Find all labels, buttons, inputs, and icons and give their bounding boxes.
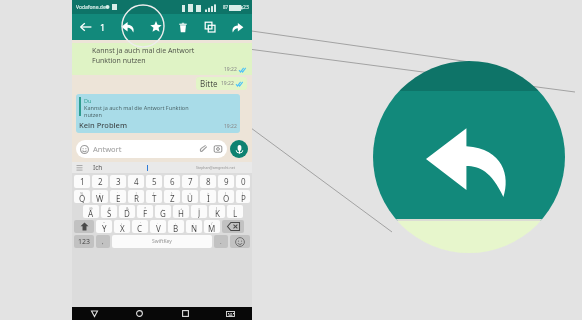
staticText: Y [102,223,107,233]
staticText: 1 [80,176,85,187]
button[interactable]: + [173,205,189,218]
staticText: + [180,206,183,211]
staticText: Kannst ja auch mal die Antwort [92,46,195,56]
staticText: Vodafone.de [76,4,106,11]
button[interactable]: { [146,190,162,203]
button[interactable]: Copy [200,17,220,37]
staticText: = [198,206,201,211]
button[interactable]: 123 [74,235,94,248]
button[interactable]: Kannst ja auch mal die Antwort [72,43,252,75]
staticText: 4 [134,176,139,187]
button[interactable]: Keyboard [222,307,238,320]
button[interactable]: * [137,205,153,218]
button[interactable]: Delete [173,17,193,37]
button[interactable]: 2 [92,175,108,188]
button[interactable]: ( [209,205,225,218]
staticText: 9 [224,176,229,187]
button[interactable]: ‹ [114,220,130,233]
button[interactable]: 5 [146,175,162,188]
staticText: · [157,221,159,226]
button[interactable]: 3 [110,175,126,188]
staticText: N [191,223,198,233]
button[interactable]: Du [76,94,240,133]
button[interactable]: Reply [117,16,139,38]
staticText: Kein Problem [79,120,127,130]
button[interactable]: ` [110,190,126,203]
staticText: M [208,223,216,233]
staticText: . [220,238,222,246]
staticText: 19:23 [236,4,249,11]
button[interactable]: , [96,235,110,248]
button[interactable]: Bitte [196,77,247,90]
button[interactable]: ) [227,205,243,218]
button[interactable]: Back [77,18,95,36]
button[interactable]: " [96,220,112,233]
button[interactable]: % [74,190,90,203]
staticText: Kannst ja auch mal die Antwort Funktion [84,104,189,111]
staticText: # [108,206,111,211]
button[interactable]: > [200,190,216,203]
staticText: SwiftKey [152,238,172,245]
button[interactable]: · [150,220,166,233]
staticText: ( [216,206,218,211]
button[interactable]: 6 [164,175,180,188]
staticText: 2 [98,176,103,187]
staticText: 0 [241,176,246,187]
button[interactable]: ~ [92,190,108,203]
button[interactable]: Forward [227,17,247,37]
staticText: ) [242,191,244,196]
button[interactable]: # [101,205,117,218]
button[interactable]: . [214,235,228,248]
button[interactable]: < [182,190,198,203]
button[interactable]: Back [86,307,102,320]
staticText: 19:22 [221,80,234,87]
button[interactable]: ( [218,190,234,203]
button[interactable] [222,220,244,233]
button[interactable]: Voice message [230,140,248,158]
button[interactable]: = [191,205,207,218]
button[interactable]: 0 [236,175,250,188]
button[interactable]: 1 [74,175,90,188]
button[interactable]: ' [132,220,148,233]
staticText: G [160,208,166,218]
button[interactable]: : [168,220,184,233]
button[interactable]: } [164,190,180,203]
staticText: U [187,193,193,203]
staticText: ‹ [121,221,123,226]
staticText: * [144,206,147,211]
staticText: 3 [116,176,121,187]
button[interactable]: Antwort [76,140,227,158]
button[interactable]: 7 [182,175,198,188]
button[interactable] [230,235,250,248]
staticText: D [124,208,130,218]
button[interactable]: - [155,205,171,218]
button[interactable] [74,220,94,233]
staticText: | [135,191,138,196]
staticText: ' [140,221,141,226]
button[interactable]: Home [131,307,147,320]
staticText: 5 [152,176,157,187]
button[interactable]: SwiftKey [112,235,212,248]
staticText: S [107,208,112,218]
button[interactable]: | [128,190,144,203]
staticText: J [198,208,201,218]
button[interactable]: 8 [200,175,216,188]
button[interactable]: @ [83,205,99,218]
staticText: ( [225,191,227,196]
button[interactable]: Star [146,17,166,37]
button[interactable]: Recent apps [177,307,193,320]
staticText: - [162,206,164,211]
button[interactable]: ; [186,220,202,233]
staticText: V [156,223,161,233]
staticText: L [233,208,238,218]
button[interactable]: ) [236,190,250,203]
button[interactable]: / [204,220,220,233]
staticText: F [143,208,148,218]
staticText: A [88,208,94,218]
button[interactable]: & [119,205,135,218]
button[interactable]: 9 [218,175,234,188]
staticText: 6 [170,176,175,187]
staticText: C [137,223,143,233]
button[interactable]: 4 [128,175,144,188]
staticText: } [171,191,173,196]
